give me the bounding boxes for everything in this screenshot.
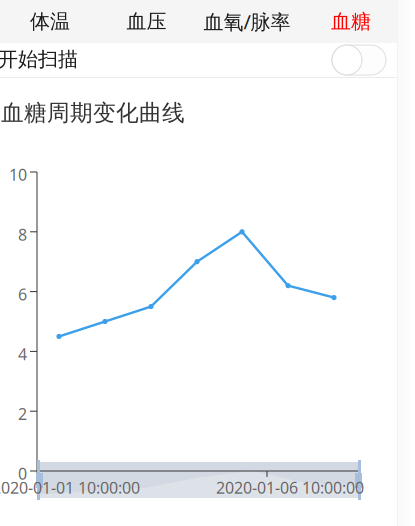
staticText: 开始扫描 <box>0 47 78 72</box>
staticText: 血糖 <box>331 9 371 34</box>
button[interactable]: 血糖 <box>301 0 401 43</box>
staticText: 8 <box>18 224 27 245</box>
staticText: 血氧/脉率 <box>203 8 290 35</box>
staticText: 0 <box>18 463 27 484</box>
staticText: 血糖周期变化曲线 <box>1 99 185 127</box>
staticText: 6 <box>18 284 27 305</box>
staticText: 2020-01-01 10:00:00 <box>0 477 140 498</box>
staticText: 2020-01-06 10:00:00 <box>216 477 364 498</box>
staticText: 10 <box>9 164 27 185</box>
staticText: 4 <box>18 343 27 365</box>
staticText: 血压 <box>126 9 166 34</box>
button[interactable]: 血压 <box>100 0 193 43</box>
button[interactable]: 血氧/脉率 <box>193 0 301 43</box>
button[interactable]: 体温 <box>0 0 100 43</box>
staticText: 体温 <box>30 9 70 34</box>
button[interactable]: 开始扫描 <box>332 45 386 75</box>
staticText: 2 <box>18 403 27 424</box>
